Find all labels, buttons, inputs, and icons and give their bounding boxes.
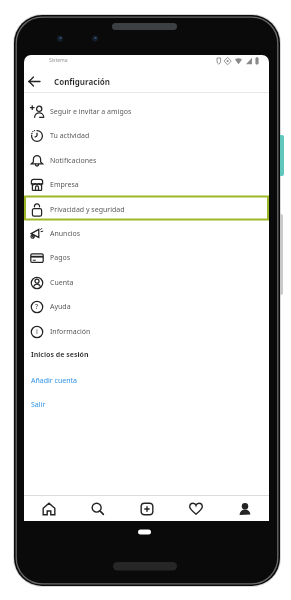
button[interactable]: Seguir e invitar a amigos bbox=[24, 100, 269, 124]
button[interactable]: Anuncios bbox=[24, 222, 269, 246]
staticText: Añadir cuenta bbox=[31, 376, 77, 386]
button[interactable] bbox=[278, 135, 284, 176]
button[interactable]: Añadir cuenta bbox=[31, 369, 77, 393]
staticText: Empresa bbox=[50, 180, 79, 190]
button[interactable]: Pagos bbox=[24, 246, 269, 270]
button[interactable]: i bbox=[24, 320, 269, 344]
staticText: Cuenta bbox=[50, 278, 74, 288]
staticText: Sistema bbox=[49, 57, 68, 64]
staticText: Notificaciones bbox=[50, 156, 97, 166]
button[interactable] bbox=[122, 496, 171, 521]
staticText: Pagos bbox=[50, 253, 71, 263]
button[interactable] bbox=[73, 496, 122, 521]
button[interactable]: Notificaciones bbox=[24, 149, 269, 173]
button[interactable]: Empresa bbox=[24, 173, 269, 197]
button[interactable] bbox=[171, 496, 220, 521]
button[interactable]: Tu actividad bbox=[24, 124, 269, 148]
button[interactable]: Salir bbox=[31, 393, 46, 417]
staticText: Salir bbox=[31, 400, 46, 410]
button[interactable] bbox=[24, 496, 73, 521]
staticText: Inicios de sesión bbox=[31, 350, 89, 360]
button[interactable] bbox=[26, 73, 42, 89]
staticText: Información bbox=[50, 327, 91, 337]
staticText: ? bbox=[35, 302, 39, 312]
staticText: Anuncios bbox=[50, 229, 81, 239]
staticText: Ayuda bbox=[50, 302, 71, 312]
staticText: Tu actividad bbox=[50, 131, 90, 141]
button[interactable]: Privacidad y seguridad bbox=[24, 198, 269, 222]
staticText: i bbox=[36, 327, 38, 337]
button[interactable]: Cuenta bbox=[24, 271, 269, 295]
staticText: Seguir e invitar a amigos bbox=[50, 107, 132, 117]
staticText: Privacidad y seguridad bbox=[50, 205, 125, 215]
button[interactable]: ? bbox=[24, 295, 269, 319]
staticText: Configuración bbox=[54, 76, 110, 87]
button[interactable] bbox=[220, 496, 269, 521]
